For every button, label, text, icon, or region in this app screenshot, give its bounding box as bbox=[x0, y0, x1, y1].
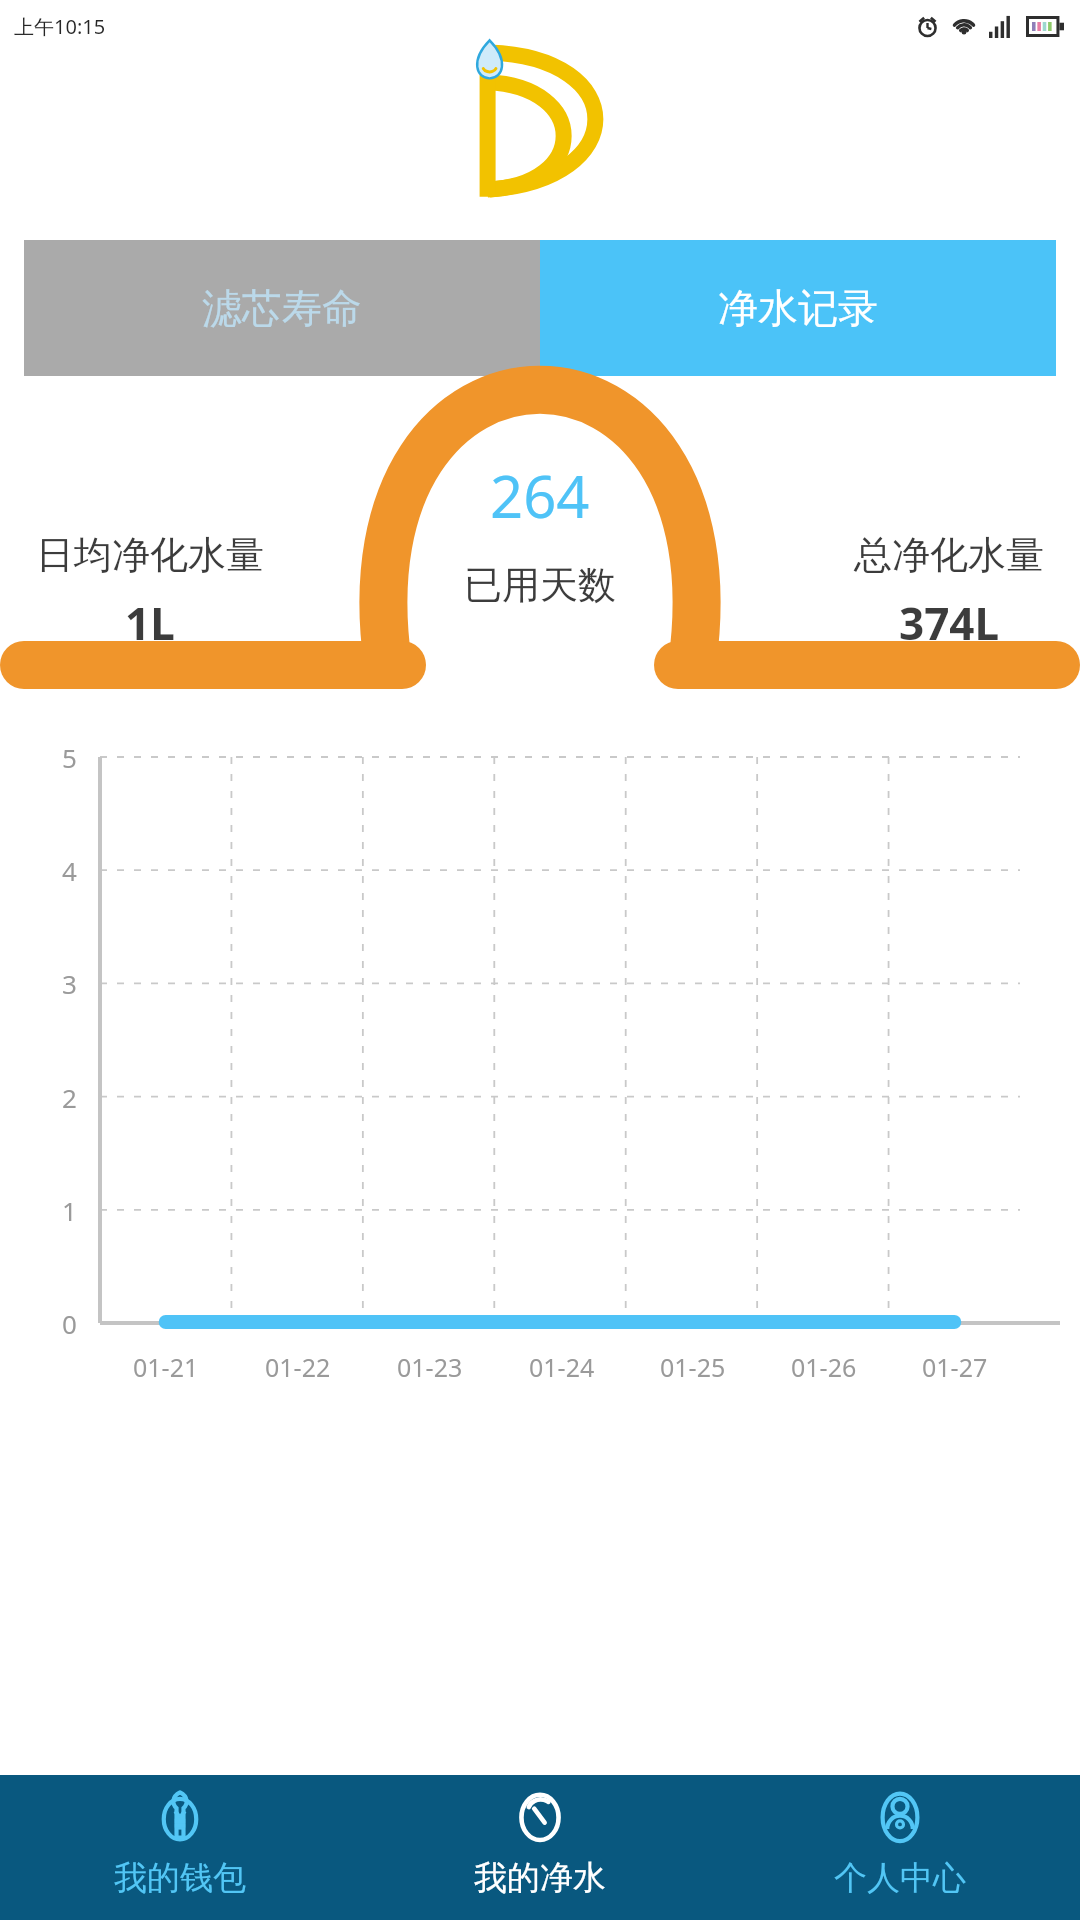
button[interactable]: 净水记录 bbox=[540, 240, 1056, 376]
staticText: 净水记录 bbox=[718, 283, 878, 333]
other: 个人中心 bbox=[871, 1789, 929, 1847]
staticText: 已用天数 bbox=[464, 561, 616, 609]
staticText: 日均净化水量 bbox=[36, 531, 264, 579]
staticText: 1L bbox=[125, 593, 175, 653]
staticText: 01-24 bbox=[529, 1350, 595, 1384]
staticText: 总净化水量 bbox=[854, 531, 1044, 579]
other: 我的钱包 bbox=[151, 1789, 209, 1847]
staticText: 01-23 bbox=[397, 1350, 463, 1384]
staticText: 01-25 bbox=[660, 1350, 726, 1384]
button[interactable]: 我的钱包 bbox=[0, 1775, 360, 1920]
staticText: 1 bbox=[62, 1193, 77, 1228]
staticText: 我的钱包 bbox=[114, 1857, 246, 1899]
staticText: 01-26 bbox=[791, 1350, 857, 1384]
button[interactable]: 滤芯寿命 bbox=[24, 240, 540, 376]
button[interactable]: 个人中心 bbox=[720, 1775, 1080, 1920]
other: 我的净水 bbox=[511, 1789, 569, 1847]
staticText: 滤芯寿命 bbox=[202, 283, 362, 333]
staticText: 2 bbox=[62, 1080, 77, 1115]
staticText: 374L bbox=[899, 593, 1000, 653]
staticText: 01-21 bbox=[133, 1350, 199, 1384]
staticText: 4 bbox=[62, 853, 77, 888]
staticText: 01-22 bbox=[265, 1350, 331, 1384]
staticText: 264 bbox=[490, 456, 590, 535]
staticText: 0 bbox=[62, 1306, 77, 1341]
staticText: 个人中心 bbox=[834, 1857, 966, 1899]
button[interactable]: 我的净水 bbox=[360, 1775, 720, 1920]
staticText: 5 bbox=[62, 740, 77, 775]
staticText: 上午10:15 bbox=[14, 13, 106, 40]
staticText: 我的净水 bbox=[474, 1857, 606, 1899]
staticText: 3 bbox=[62, 966, 77, 1001]
staticText: 01-27 bbox=[922, 1350, 988, 1384]
